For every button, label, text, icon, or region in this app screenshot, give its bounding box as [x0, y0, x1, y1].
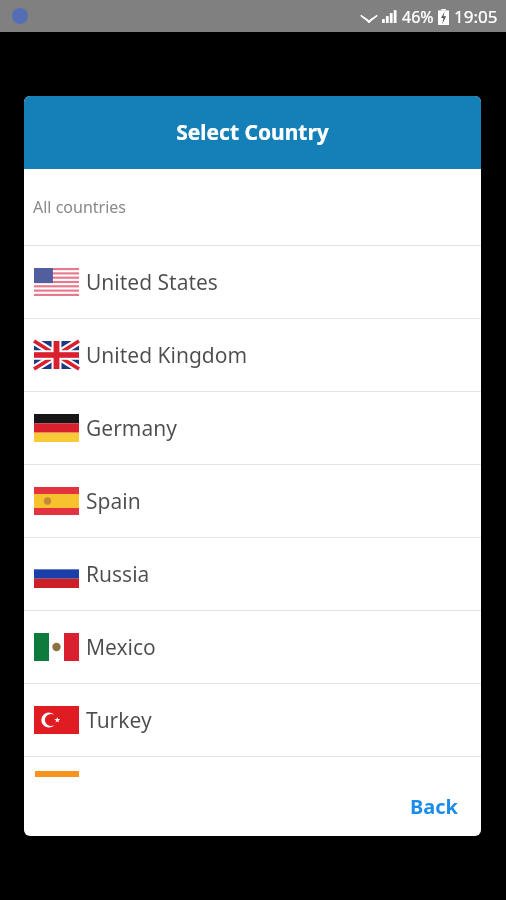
staticText: Russia	[86, 560, 150, 589]
button[interactable]: United States	[24, 246, 481, 318]
button[interactable]: Mexico	[24, 611, 481, 683]
button[interactable]: Spain	[24, 465, 481, 537]
button[interactable]: Turkey	[24, 684, 481, 756]
staticText: United States	[86, 268, 218, 297]
button[interactable]: Germany	[24, 392, 481, 464]
staticText: United Kingdom	[86, 341, 248, 370]
staticText: Back	[410, 793, 458, 820]
staticText: Mexico	[86, 633, 156, 662]
staticText: All countries	[33, 196, 126, 218]
staticText: Select Country	[176, 118, 329, 147]
staticText: Spain	[86, 487, 141, 516]
button[interactable]: Back	[380, 783, 481, 830]
button[interactable]: United Kingdom	[24, 319, 481, 391]
staticText: 46%	[402, 6, 434, 28]
staticText: Germany	[86, 414, 177, 443]
staticText: 19:05	[454, 5, 498, 28]
button[interactable]: Russia	[24, 538, 481, 610]
staticText: Turkey	[86, 706, 152, 735]
